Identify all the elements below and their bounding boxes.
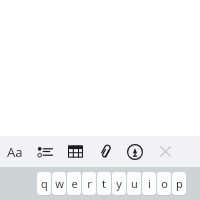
button[interactable]: t (97, 172, 111, 195)
staticText: w (55, 176, 64, 191)
button[interactable]: Text format (0, 136, 30, 167)
button[interactable]: Insert table (60, 136, 90, 167)
staticText: e (71, 176, 78, 191)
button[interactable]: e (67, 172, 81, 195)
staticText: Aa (7, 143, 23, 161)
staticText: o (161, 176, 168, 191)
button[interactable]: u (127, 172, 141, 195)
button[interactable]: Attach file (90, 136, 120, 167)
staticText: u (131, 176, 138, 191)
button[interactable]: r (82, 172, 96, 195)
staticText: p (176, 176, 183, 191)
button[interactable]: Close keyboard (150, 136, 180, 167)
button[interactable]: q (37, 172, 51, 195)
staticText: y (116, 176, 122, 191)
button[interactable]: i (142, 172, 156, 195)
button[interactable]: Bulleted list (30, 136, 60, 167)
button[interactable]: o (157, 172, 171, 195)
staticText: t (102, 176, 106, 191)
button[interactable]: y (112, 172, 126, 195)
button[interactable]: p (172, 172, 186, 195)
button[interactable]: Markup (120, 136, 150, 167)
staticText: r (87, 176, 92, 191)
button[interactable]: w (52, 172, 66, 195)
staticText: q (41, 176, 48, 191)
staticText: i (148, 176, 151, 191)
